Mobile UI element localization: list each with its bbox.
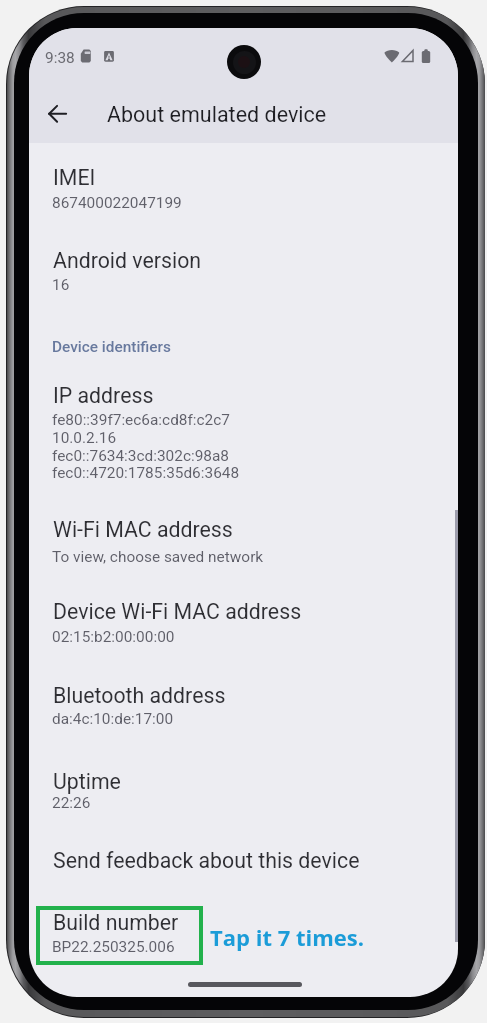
staticText: Send feedback about this device — [53, 848, 360, 873]
staticText: Device Wi-Fi MAC address — [53, 599, 302, 624]
staticText: Build number — [53, 910, 179, 935]
staticText: Android version — [53, 248, 202, 273]
staticText: Bluetooth address — [53, 683, 226, 708]
staticText: Device identifiers — [52, 338, 171, 356]
button[interactable]: Navigate up — [34, 90, 82, 138]
staticText: 9:38 — [45, 49, 75, 67]
staticText: BP22.250325.006 — [52, 938, 175, 956]
staticText: Uptime — [53, 769, 121, 794]
staticText: da:4c:10:de:17:00 — [52, 710, 174, 728]
button[interactable] — [36, 906, 203, 965]
staticText: fec0::7634:3cd:302c:98a8 — [52, 447, 229, 465]
staticText: IMEI — [53, 165, 96, 190]
staticText: 22:26 — [52, 794, 91, 812]
staticText: fe80::39f7:ec6a:cd8f:c2c7 — [52, 411, 230, 429]
staticText: To view, choose saved network — [52, 548, 264, 566]
staticText: Tap it 7 times. — [210, 922, 365, 952]
staticText: 16 — [52, 276, 70, 294]
staticText: 10.0.2.16 — [52, 429, 117, 447]
staticText: 867400022047199 — [52, 194, 182, 212]
staticText: Wi-Fi MAC address — [53, 517, 233, 542]
staticText: About emulated device — [107, 102, 327, 127]
button[interactable] — [50, 334, 174, 360]
staticText: fec0::4720:1785:35d6:3648 — [52, 464, 240, 482]
staticText: IP address — [53, 383, 154, 408]
staticText: 02:15:b2:00:00:00 — [52, 628, 175, 646]
